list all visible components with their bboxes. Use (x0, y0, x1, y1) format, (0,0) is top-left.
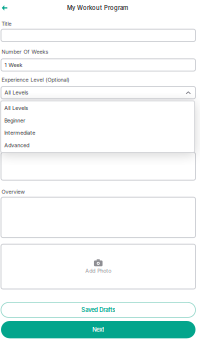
staticText: Next (92, 326, 104, 333)
button[interactable]: Intermediate (1, 127, 195, 139)
button[interactable]: Saved Drafts (1, 302, 195, 317)
staticText: My Workout Program (67, 4, 128, 11)
button[interactable]: All Levels (1, 86, 195, 99)
staticText: Beginner (4, 117, 25, 124)
staticText: Overview (2, 189, 25, 195)
button[interactable]: Add Photo (1, 244, 195, 289)
button[interactable]: Back (0, 2, 13, 14)
button[interactable]: Beginner (1, 114, 195, 127)
staticText: Experience Level (Optional) (2, 77, 70, 83)
button[interactable]: 1 Week (1, 59, 195, 71)
staticText: All Levels (4, 105, 28, 111)
button[interactable]: Next (1, 321, 195, 338)
staticText: Number Of Weeks (2, 49, 49, 55)
staticText: Add Photo (85, 267, 111, 274)
staticText: Advanced (4, 142, 29, 149)
staticText: Title (2, 20, 12, 27)
staticText: Intermediate (4, 130, 35, 136)
staticText: All Levels (5, 89, 29, 96)
button[interactable]: All Levels (1, 102, 195, 114)
button[interactable]: Advanced (1, 139, 195, 151)
staticText: 1 Week (5, 62, 23, 68)
staticText: Saved Drafts (81, 306, 115, 313)
